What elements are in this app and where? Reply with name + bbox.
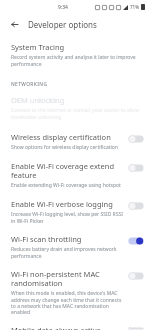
- button[interactable]: Wi-Fi scan throttling: [0, 229, 150, 264]
- staticText: Wi-Fi scan throttling: [11, 234, 82, 244]
- staticText: 71%: [130, 4, 139, 10]
- button[interactable]: Back: [7, 17, 21, 31]
- staticText: When this mode is enabled, this device's…: [11, 290, 123, 315]
- button[interactable]: Enable Wi-Fi coverage extend feature: [0, 156, 150, 194]
- staticText: Reduces battery drain and improves netwo…: [11, 246, 123, 259]
- button[interactable]: Toggle off: [128, 134, 144, 144]
- staticText: Developer options: [28, 19, 97, 30]
- button[interactable]: Mobile data always active: [0, 320, 150, 335]
- staticText: Connect to the internet or contact your …: [11, 107, 141, 120]
- staticText: Enable Wi-Fi verbose logging: [11, 199, 113, 209]
- staticText: Mobile data always active: [11, 325, 101, 330]
- staticText: 9:34: [58, 4, 68, 11]
- staticText: Increase Wi-Fi logging level, show per S…: [11, 211, 123, 224]
- button[interactable]: Toggle off: [128, 163, 144, 173]
- button[interactable]: Enable Wi-Fi verbose logging: [0, 194, 150, 229]
- button[interactable]: Toggle off: [128, 271, 144, 281]
- staticText: NETWORKING: [11, 81, 48, 88]
- staticText: Wi-Fi non-persistent MAC randomisation: [11, 269, 123, 288]
- staticText: System Tracing: [11, 42, 65, 52]
- button[interactable]: System Tracing: [0, 37, 150, 72]
- button[interactable]: Toggle off: [128, 327, 144, 330]
- button[interactable]: Toggle on: [128, 236, 144, 246]
- button[interactable]: Wi-Fi non-persistent MAC randomisation: [0, 264, 150, 320]
- staticText: Show options for wireless display certif…: [11, 144, 118, 151]
- staticText: Record system activity and analyse it la…: [11, 54, 141, 67]
- staticText: OEM unlocking: [11, 95, 65, 105]
- staticText: Enable extending Wi-Fi coverage using ho…: [11, 182, 121, 189]
- button[interactable]: Wireless display certification: [0, 127, 150, 156]
- staticText: Enable Wi-Fi coverage extend feature: [11, 161, 123, 180]
- button[interactable]: Toggle off: [128, 201, 144, 211]
- staticText: Wireless display certification: [11, 132, 111, 142]
